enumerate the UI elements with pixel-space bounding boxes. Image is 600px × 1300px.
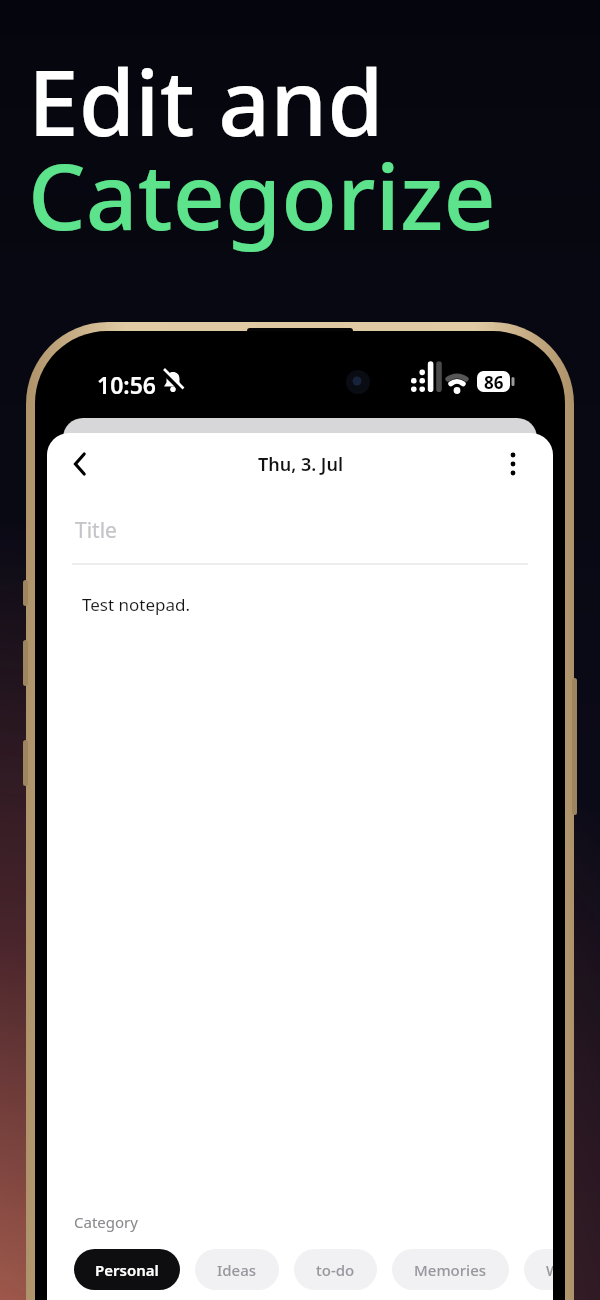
staticText: Memories <box>414 1260 487 1280</box>
staticText: Category <box>74 1212 138 1232</box>
staticText: Weekly <box>546 1260 553 1280</box>
button[interactable]: Title <box>75 516 117 545</box>
staticText: 86 <box>484 371 504 392</box>
staticText: 10:56 <box>97 369 156 400</box>
button[interactable]: Memories <box>392 1249 509 1290</box>
button[interactable]: Personal <box>74 1249 180 1290</box>
button[interactable]: Weekly <box>524 1249 553 1290</box>
button[interactable] <box>493 444 533 484</box>
staticText: Personal <box>95 1260 159 1280</box>
staticText: Thu, 3. Jul <box>258 452 343 477</box>
staticText: Edit and <box>28 39 384 163</box>
staticText: Ideas <box>217 1260 257 1280</box>
staticText: to-do <box>316 1260 355 1280</box>
button[interactable] <box>61 444 101 484</box>
button[interactable]: to-do <box>294 1249 377 1290</box>
staticText: Categorize <box>28 133 496 257</box>
staticText: Test notepad. <box>82 593 191 616</box>
button[interactable]: Ideas <box>195 1249 279 1290</box>
